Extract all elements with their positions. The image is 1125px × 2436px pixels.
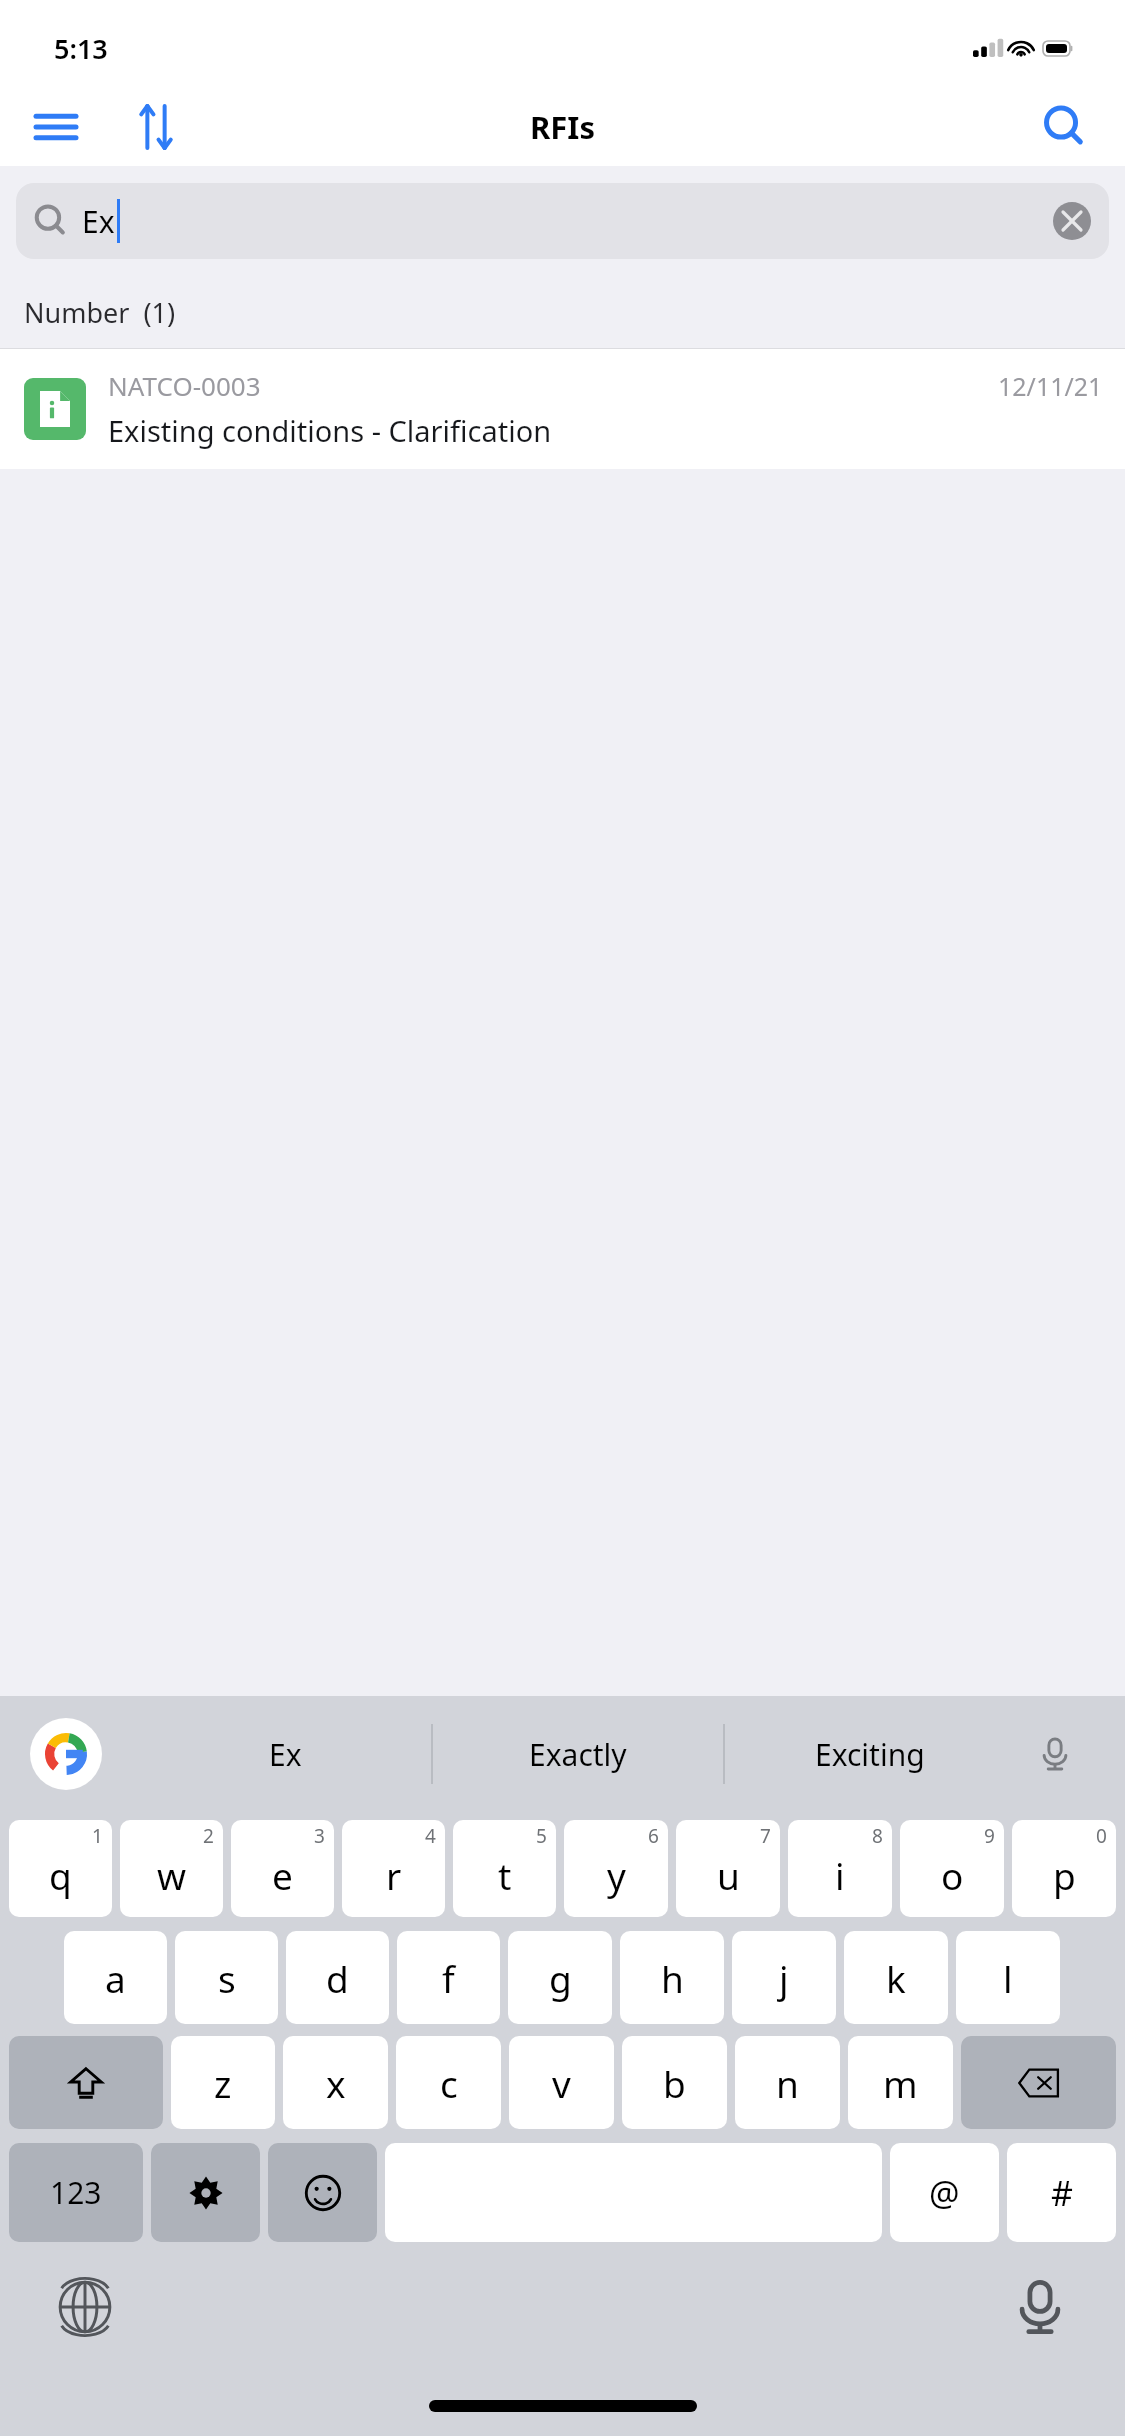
button[interactable]: Menu bbox=[18, 89, 94, 165]
staticText: RFIs bbox=[530, 106, 595, 148]
button[interactable]: Backspace bbox=[961, 2036, 1116, 2129]
staticText: 1 bbox=[92, 1823, 103, 1849]
button[interactable]: Search bbox=[1027, 89, 1103, 165]
staticText: n bbox=[776, 2058, 799, 2108]
staticText: v bbox=[552, 2058, 571, 2108]
staticText: @ bbox=[929, 2170, 960, 2216]
button[interactable]: Ex bbox=[140, 1696, 431, 1812]
button[interactable]: 0 bbox=[1012, 1820, 1116, 1917]
staticText: 5 bbox=[536, 1823, 547, 1849]
staticText: u bbox=[717, 1850, 740, 1900]
button[interactable]: Clear bbox=[1053, 202, 1091, 240]
button[interactable]: 2 bbox=[120, 1820, 223, 1917]
staticText: x bbox=[326, 2058, 346, 2108]
button[interactable]: Google bbox=[30, 1718, 102, 1790]
button[interactable]: z bbox=[171, 2036, 275, 2129]
button[interactable]: 8 bbox=[788, 1820, 892, 1917]
staticText: w bbox=[157, 1850, 187, 1900]
staticText: s bbox=[218, 1953, 236, 2003]
button[interactable]: 4 bbox=[342, 1820, 445, 1917]
staticText: j bbox=[779, 1953, 789, 2003]
staticText: k bbox=[886, 1953, 906, 2003]
staticText: Existing conditions - Clarification bbox=[108, 411, 552, 450]
staticText: p bbox=[1053, 1850, 1076, 1900]
button[interactable]: @ bbox=[890, 2143, 999, 2242]
staticText: l bbox=[1003, 1953, 1013, 2003]
staticText: b bbox=[663, 2058, 686, 2108]
button[interactable]: l bbox=[956, 1931, 1060, 2024]
button[interactable]: NATCO-0003 bbox=[0, 349, 1125, 469]
button[interactable]: Shift bbox=[9, 2036, 163, 2129]
button[interactable]: v bbox=[509, 2036, 614, 2129]
button[interactable]: k bbox=[844, 1931, 948, 2024]
button[interactable]: h bbox=[620, 1931, 724, 2024]
button[interactable]: 1 bbox=[9, 1820, 112, 1917]
staticText: Ex bbox=[82, 201, 115, 242]
staticText: 0 bbox=[1096, 1823, 1107, 1849]
button[interactable]: Ex bbox=[16, 183, 1109, 259]
staticText: c bbox=[440, 2058, 458, 2108]
staticText: 2 bbox=[203, 1823, 214, 1849]
button[interactable]: Sort bbox=[118, 89, 194, 165]
staticText: e bbox=[272, 1850, 293, 1900]
staticText: a bbox=[105, 1953, 126, 2003]
button[interactable]: Exciting bbox=[725, 1696, 1015, 1812]
staticText: 5:13 bbox=[54, 30, 108, 67]
staticText: g bbox=[549, 1953, 572, 2003]
button[interactable]: j bbox=[732, 1931, 836, 2024]
staticText: f bbox=[442, 1953, 455, 2003]
button[interactable]: g bbox=[508, 1931, 612, 2024]
button[interactable]: Voice typing bbox=[997, 2264, 1083, 2350]
button[interactable]: a bbox=[64, 1931, 167, 2024]
button[interactable]: n bbox=[735, 2036, 840, 2129]
staticText: 4 bbox=[425, 1823, 436, 1849]
staticText: Ex bbox=[269, 1734, 302, 1775]
staticText: 7 bbox=[760, 1823, 771, 1849]
button[interactable]: b bbox=[622, 2036, 727, 2129]
staticText: 6 bbox=[648, 1823, 659, 1849]
button[interactable]: Emoji bbox=[268, 2143, 377, 2242]
staticText: # bbox=[1051, 2170, 1073, 2216]
staticText: Exactly bbox=[529, 1734, 627, 1775]
button[interactable]: 6 bbox=[564, 1820, 668, 1917]
staticText: i bbox=[835, 1850, 845, 1900]
button[interactable]: x bbox=[283, 2036, 388, 2129]
staticText: Exciting bbox=[815, 1734, 925, 1775]
staticText: d bbox=[326, 1953, 349, 2003]
button[interactable]: 3 bbox=[231, 1820, 334, 1917]
button[interactable]: d bbox=[286, 1931, 389, 2024]
staticText: 3 bbox=[314, 1823, 325, 1849]
button[interactable]: Voice input bbox=[1015, 1696, 1095, 1812]
staticText: NATCO-0003 bbox=[108, 368, 261, 403]
staticText: 8 bbox=[872, 1823, 883, 1849]
staticText: o bbox=[941, 1850, 964, 1900]
staticText: q bbox=[49, 1850, 72, 1900]
staticText: h bbox=[661, 1953, 684, 2003]
staticText: z bbox=[214, 2058, 232, 2108]
button[interactable]: Settings bbox=[151, 2143, 260, 2242]
button[interactable]: # bbox=[1007, 2143, 1116, 2242]
button[interactable]: s bbox=[175, 1931, 278, 2024]
button[interactable]: c bbox=[396, 2036, 501, 2129]
staticText: 123 bbox=[50, 2172, 102, 2213]
button[interactable]: Change language bbox=[42, 2264, 128, 2350]
staticText: Number (1) bbox=[24, 294, 176, 331]
button[interactable]: f bbox=[397, 1931, 500, 2024]
button[interactable]: 123 bbox=[9, 2143, 143, 2242]
staticText: 9 bbox=[984, 1823, 995, 1849]
staticText: t bbox=[498, 1850, 512, 1900]
staticText: m bbox=[883, 2058, 918, 2108]
button[interactable]: 9 bbox=[900, 1820, 1004, 1917]
button[interactable]: Exactly bbox=[433, 1696, 723, 1812]
button[interactable]: m bbox=[848, 2036, 953, 2129]
staticText: 12/11/21 bbox=[998, 369, 1103, 403]
staticText: r bbox=[386, 1850, 402, 1900]
button[interactable]: 5 bbox=[453, 1820, 556, 1917]
staticText: y bbox=[607, 1850, 626, 1900]
button[interactable]: 7 bbox=[676, 1820, 780, 1917]
